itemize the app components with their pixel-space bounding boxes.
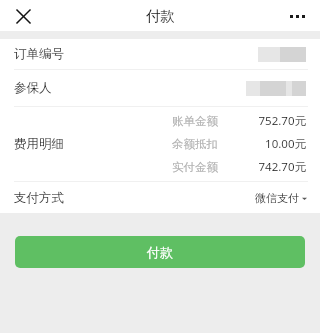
staticText: 付款	[146, 7, 175, 25]
staticText: 752.70元	[258, 113, 306, 129]
staticText: 742.70元	[258, 159, 306, 175]
staticText: 账单金额	[172, 114, 218, 128]
staticText: 10.00元	[265, 136, 306, 152]
staticText: 余额抵扣	[172, 137, 218, 151]
staticText: 实付金额	[172, 160, 218, 174]
staticText: 费用明细	[14, 136, 64, 152]
button[interactable]: 付款	[15, 236, 305, 268]
staticText: 订单编号	[14, 46, 64, 62]
staticText: 微信支付	[255, 191, 299, 205]
staticText: 支付方式	[14, 190, 64, 206]
button[interactable]: 参保人	[0, 70, 320, 106]
button[interactable]: 支付方式	[0, 182, 320, 213]
button[interactable]: Close	[8, 1, 38, 31]
button[interactable]: More options	[282, 1, 312, 31]
button[interactable]: 订单编号	[0, 39, 320, 69]
button[interactable]: 费用明细	[0, 107, 320, 181]
staticText: 参保人	[14, 80, 52, 96]
staticText: 付款	[147, 244, 173, 260]
